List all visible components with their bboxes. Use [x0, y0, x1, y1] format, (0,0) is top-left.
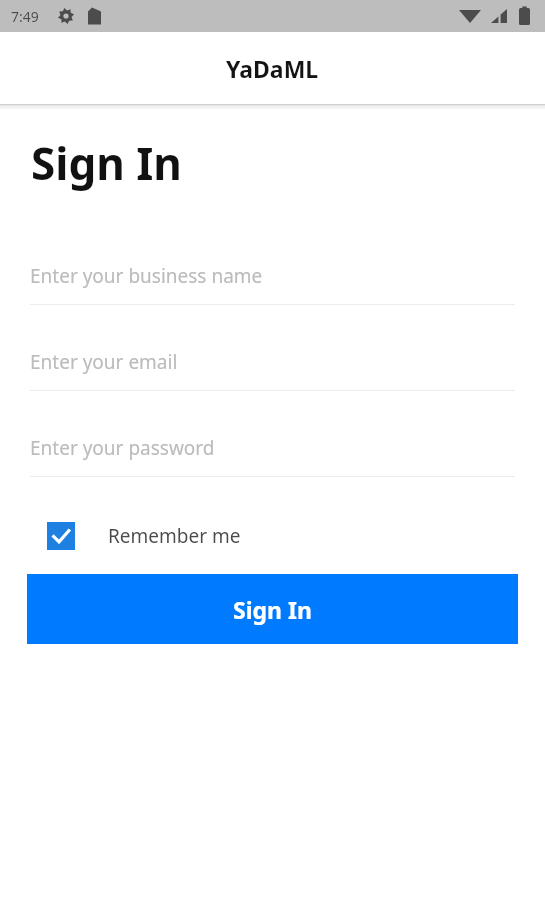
button[interactable]: Enter your password [30, 420, 515, 506]
button[interactable]: Enter your business name [30, 248, 515, 334]
staticText: Remember me [108, 523, 241, 549]
staticText: Enter your password [30, 435, 215, 461]
staticText: Sign In [31, 133, 182, 193]
button[interactable]: Remember me checkbox [47, 522, 241, 550]
staticText: 7:49 [11, 7, 39, 26]
button[interactable]: Sign In [27, 574, 518, 644]
other: Remember me checkbox [47, 522, 75, 550]
staticText: Enter your business name [30, 263, 263, 289]
staticText: Enter your email [30, 349, 178, 375]
staticText: YaDaML [226, 53, 319, 84]
button[interactable]: Enter your email [30, 334, 515, 420]
staticText: Sign In [233, 594, 312, 625]
